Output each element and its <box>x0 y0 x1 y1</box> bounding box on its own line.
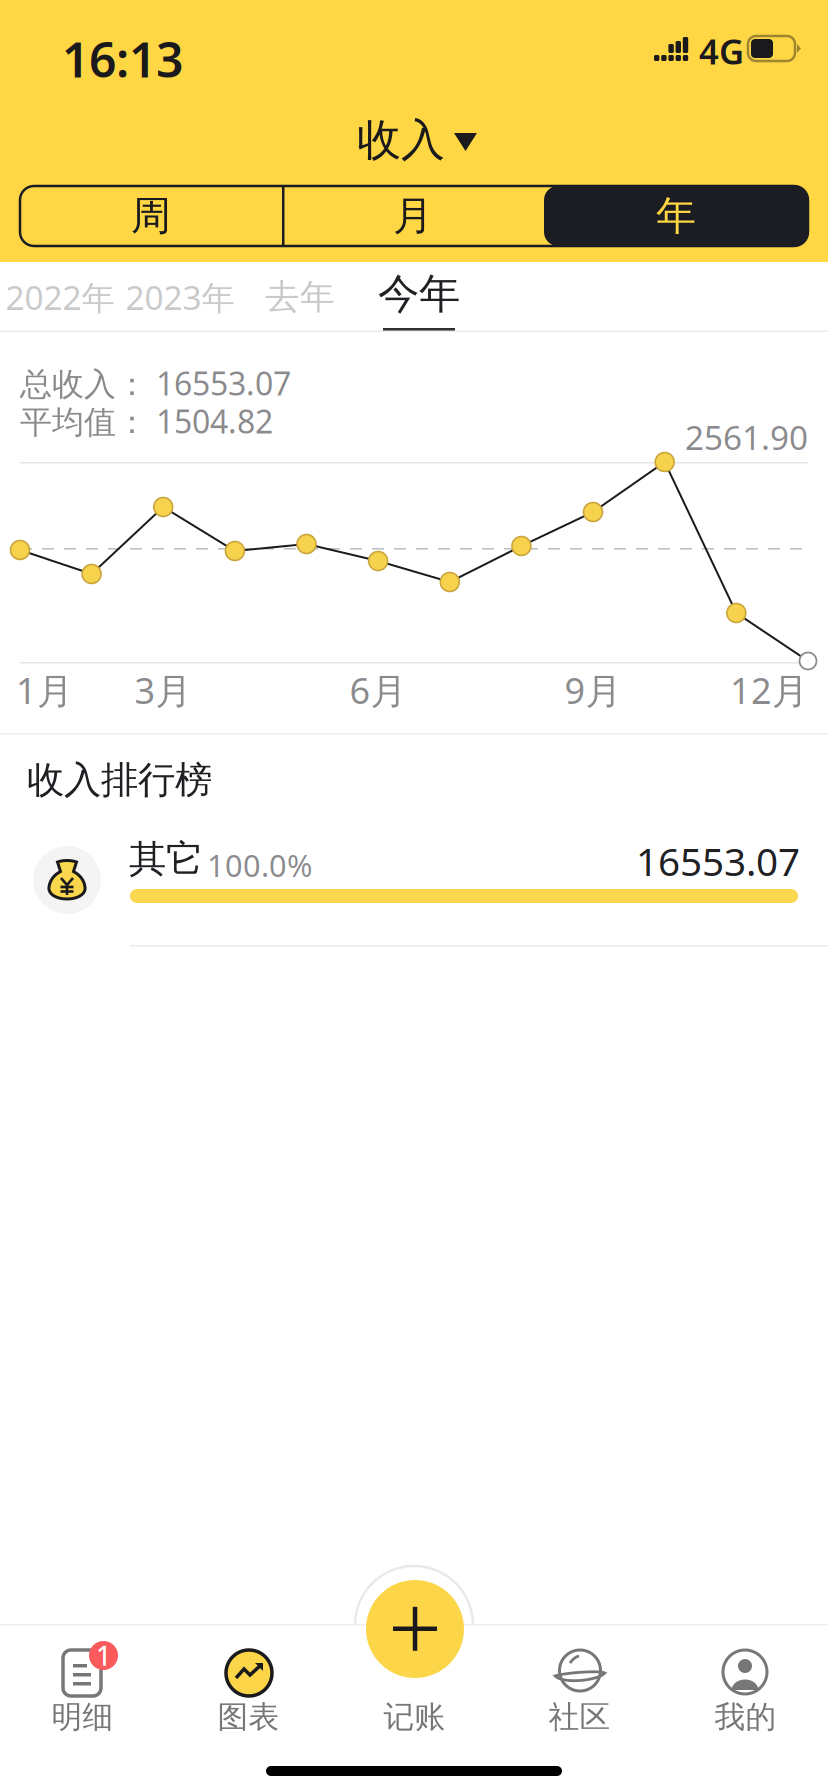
staticText: 今年 <box>378 269 460 319</box>
staticText: 2023年 <box>125 275 234 319</box>
staticText: 9月 <box>564 666 621 714</box>
button[interactable]: 我的 <box>663 1632 828 1752</box>
staticText: 我的 <box>714 1698 776 1736</box>
staticText: 月 <box>393 191 433 240</box>
staticText: 明细 <box>51 1698 113 1736</box>
button[interactable]: 2023年 <box>120 262 240 332</box>
button[interactable]: 记账 <box>332 1632 497 1752</box>
staticText: 16:13 <box>62 27 183 91</box>
staticText: 年 <box>656 191 696 240</box>
button[interactable]: 收入 <box>357 112 497 168</box>
staticText: 记账 <box>383 1698 445 1736</box>
staticText: 收入 <box>357 113 445 167</box>
button[interactable]: 今年 <box>364 262 474 332</box>
staticText: 4G <box>699 28 744 74</box>
staticText: 1 <box>96 1638 111 1673</box>
staticText: 去年 <box>265 276 335 318</box>
staticText: 16553.07 <box>636 835 800 887</box>
staticText: 1月 <box>16 666 73 714</box>
button[interactable]: 其它 <box>0 833 828 948</box>
staticText: 2561.90 <box>685 415 808 459</box>
button[interactable]: 图表 <box>166 1632 331 1752</box>
staticText: 其它 <box>129 836 203 882</box>
staticText: 6月 <box>349 666 406 714</box>
staticText: 平均值： 1504.82 <box>20 400 273 442</box>
button[interactable]: 社区 <box>497 1632 662 1752</box>
staticText: 2022年 <box>5 275 114 319</box>
button[interactable]: 1 <box>0 1632 165 1752</box>
staticText: 总收入： 16553.07 <box>20 362 291 404</box>
staticText: 周 <box>131 191 171 240</box>
staticText: 社区 <box>548 1698 610 1736</box>
staticText: 收入排行榜 <box>27 757 212 803</box>
button[interactable]: 记账 <box>366 1580 464 1678</box>
staticText: 12月 <box>730 666 808 714</box>
button[interactable]: 年 <box>544 186 808 246</box>
button[interactable]: 去年 <box>250 262 350 332</box>
button[interactable]: 月 <box>282 186 544 246</box>
staticText: 100.0% <box>207 845 312 885</box>
button[interactable]: 2022年 <box>0 262 120 332</box>
staticText: 图表 <box>217 1698 279 1736</box>
staticText: 3月 <box>134 666 191 714</box>
button[interactable]: 周 <box>20 186 282 246</box>
